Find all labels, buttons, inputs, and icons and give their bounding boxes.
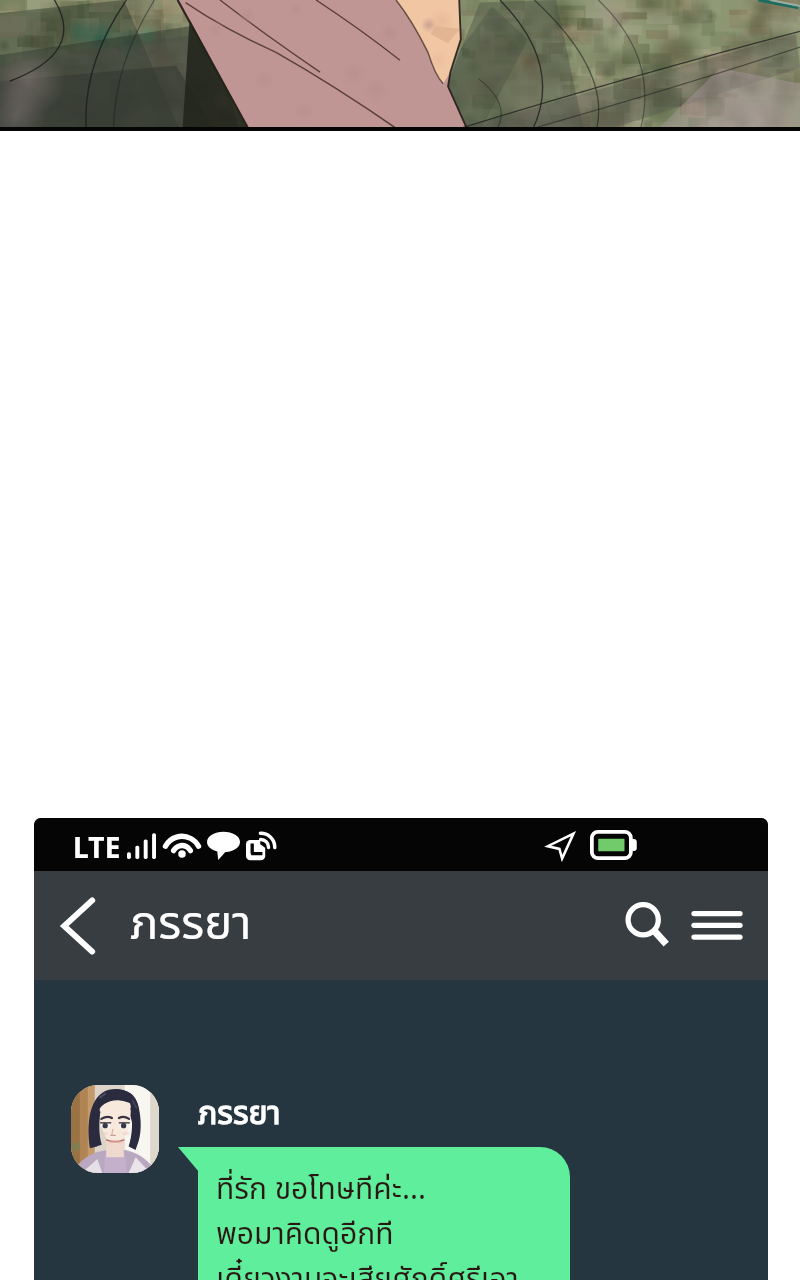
staticText: ภรรยา xyxy=(130,889,252,960)
button[interactable]: Search xyxy=(624,902,672,950)
staticText: พอมาคิดดูอีกที xyxy=(216,1212,394,1257)
button[interactable]: Back xyxy=(53,894,109,958)
staticText: ภรรยา xyxy=(198,1090,281,1138)
button[interactable]: Profile picture xyxy=(71,1085,159,1173)
button[interactable]: Menu xyxy=(694,903,740,949)
staticText: ที่รัก ขอโทษทีค่ะ... xyxy=(216,1167,426,1212)
staticText: LTE xyxy=(73,828,121,866)
staticText: เดี๋ยวงานจะเสียศักดิ์ศรีเอา xyxy=(216,1257,519,1280)
